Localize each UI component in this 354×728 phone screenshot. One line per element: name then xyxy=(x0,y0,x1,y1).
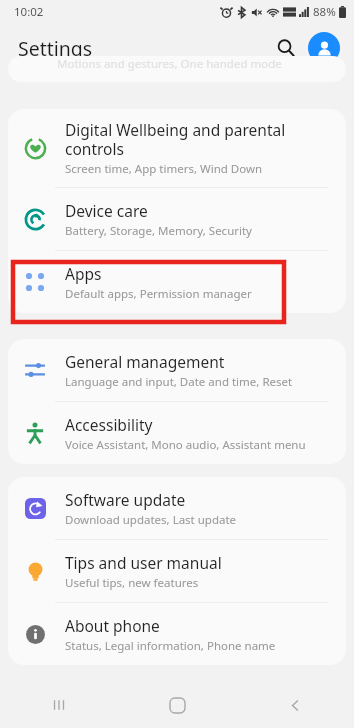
button[interactable]: Search xyxy=(269,31,303,65)
button[interactable]: Motions and gestures, One handed mode xyxy=(8,56,346,82)
button[interactable]: About phone xyxy=(8,603,346,665)
staticText: General management xyxy=(65,351,225,372)
button[interactable]: Digital Wellbeing and parental controls xyxy=(8,109,346,187)
staticText: About phone xyxy=(65,615,160,636)
button[interactable]: Accessibility xyxy=(8,402,346,464)
staticText: Digital Wellbeing and parental controls xyxy=(65,119,330,159)
staticText: Screen time, App timers, Wind Down xyxy=(65,161,263,177)
button[interactable]: Account xyxy=(308,32,340,64)
staticText: Accessibility xyxy=(65,414,153,435)
staticText: Settings xyxy=(18,35,93,62)
staticText: Software update xyxy=(65,489,186,510)
staticText: Device care xyxy=(65,200,148,221)
button[interactable]: General management xyxy=(8,339,346,401)
staticText: Default apps, Permission manager xyxy=(65,286,252,302)
staticText: Battery, Storage, Memory, Security xyxy=(65,223,252,239)
staticText: Apps xyxy=(65,263,102,284)
button[interactable]: Home xyxy=(118,682,236,728)
button[interactable]: Software update xyxy=(8,477,346,539)
button[interactable]: Back xyxy=(236,682,354,728)
staticText: 10:02 xyxy=(14,4,44,20)
button[interactable]: Tips and user manual xyxy=(8,540,346,602)
button[interactable]: Apps xyxy=(8,251,346,313)
staticText: Useful tips, new features xyxy=(65,575,199,591)
staticText: Voice Assistant, Mono audio, Assistant m… xyxy=(65,437,306,453)
staticText: Language and input, Date and time, Reset xyxy=(65,374,293,390)
staticText: Download updates, Last update xyxy=(65,512,237,528)
button[interactable]: Recents xyxy=(0,682,118,728)
staticText: Motions and gestures, One handed mode xyxy=(57,56,282,72)
staticText: Status, Legal information, Phone name xyxy=(65,638,276,654)
button[interactable]: Device care xyxy=(8,188,346,250)
staticText: Tips and user manual xyxy=(65,552,222,573)
staticText: 88% xyxy=(313,4,336,20)
